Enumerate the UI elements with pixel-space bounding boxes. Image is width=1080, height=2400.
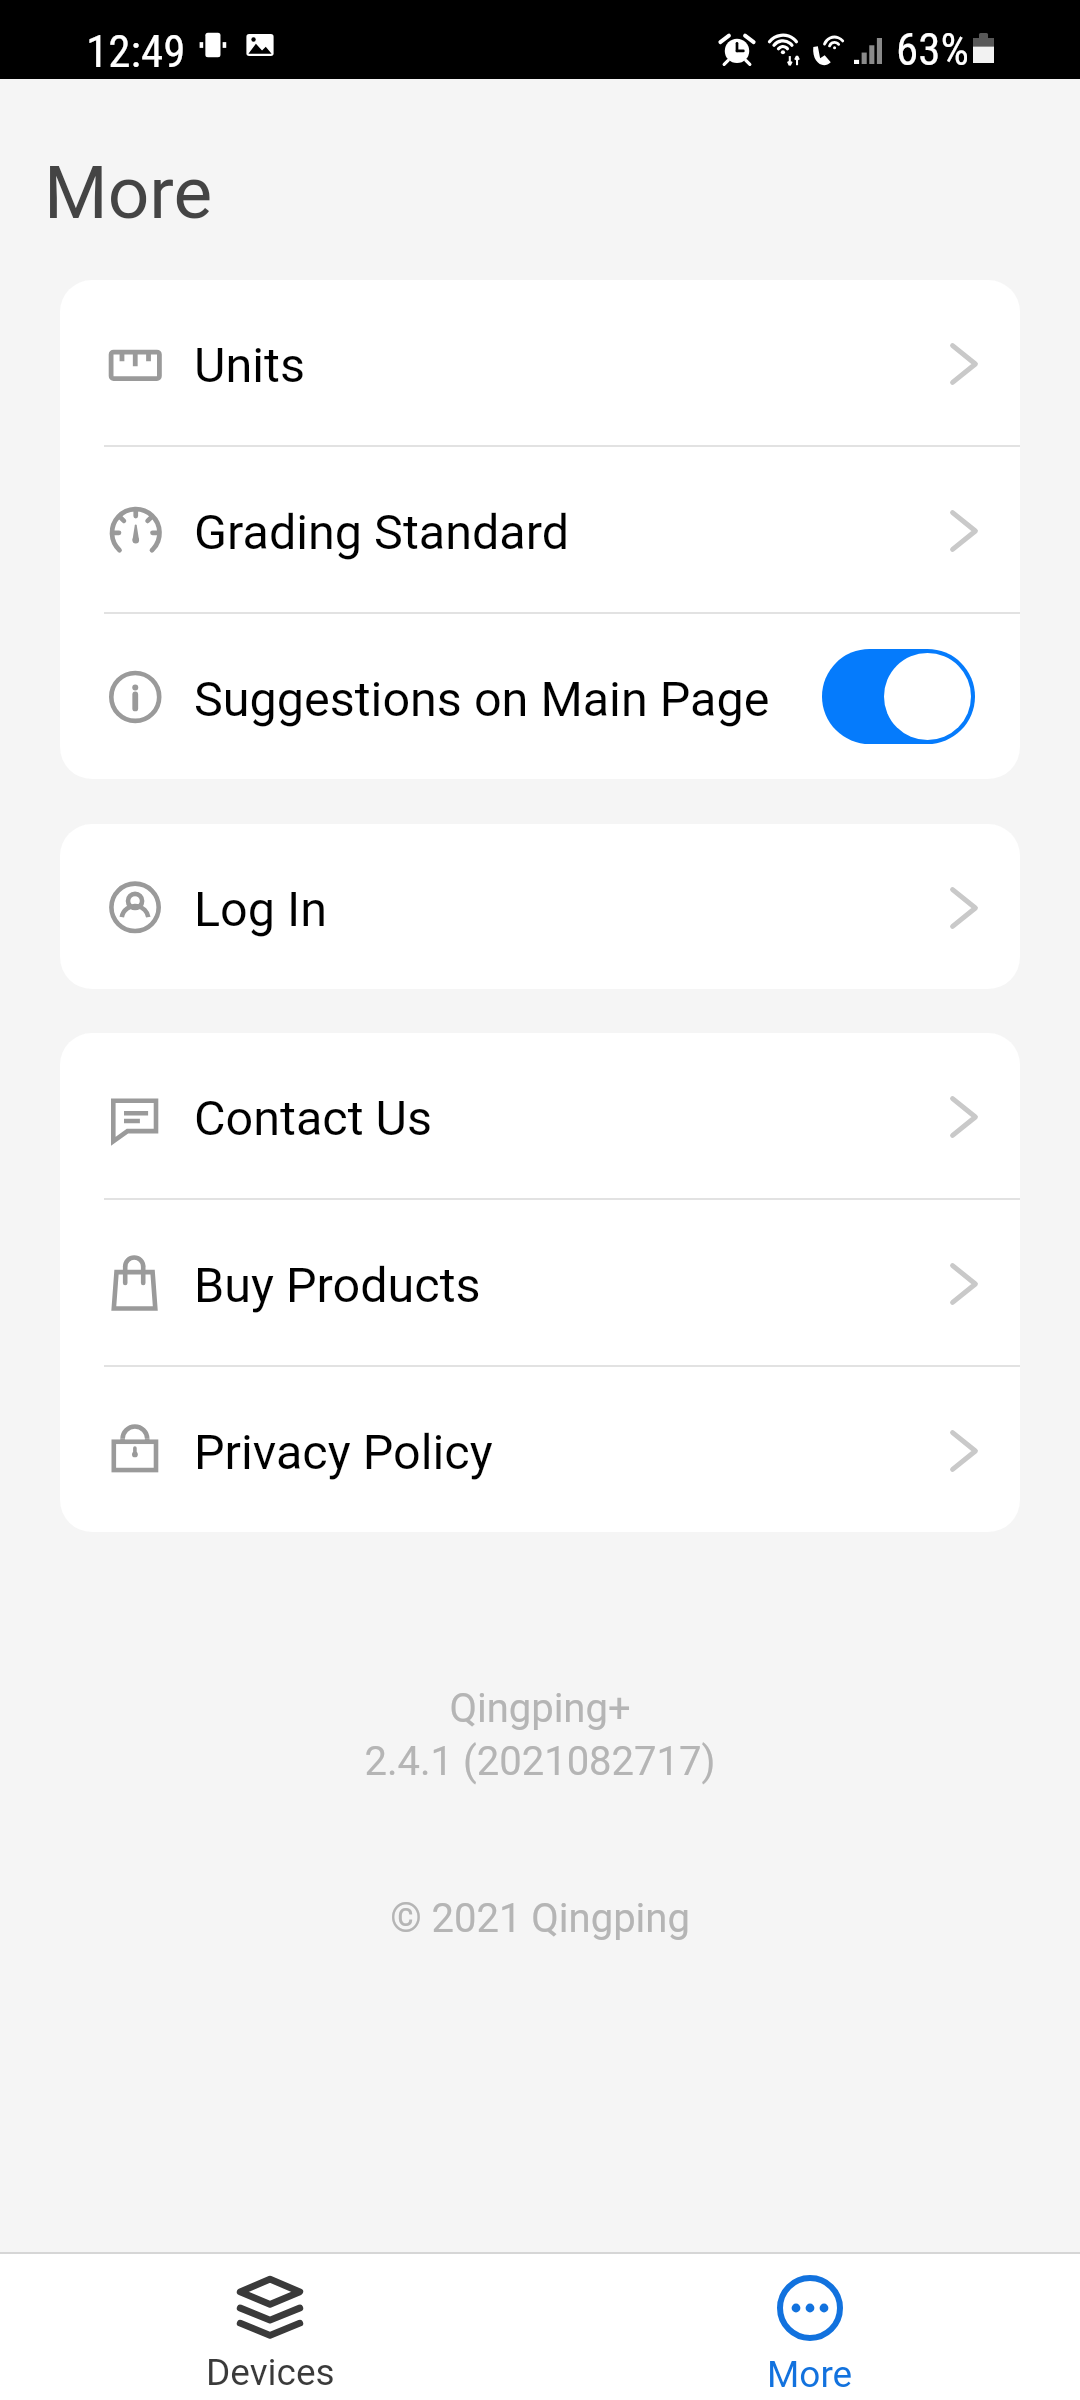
staticText: Log In bbox=[194, 881, 950, 938]
button[interactable]: Units bbox=[60, 280, 1020, 445]
staticText: More bbox=[44, 150, 213, 236]
staticText: © 2021 Qingping bbox=[0, 1895, 1080, 1942]
staticText: More bbox=[767, 2353, 853, 2396]
button[interactable]: Contact Us bbox=[60, 1033, 1020, 1198]
button[interactable]: More bbox=[540, 2254, 1080, 2400]
button[interactable]: Suggestions on Main Page bbox=[822, 649, 975, 744]
other: More bbox=[776, 2274, 844, 2342]
button[interactable]: Devices bbox=[0, 2254, 540, 2400]
staticText: Grading Standard bbox=[194, 504, 950, 561]
button[interactable]: Buy Products bbox=[60, 1200, 1020, 1365]
staticText: Devices bbox=[206, 2351, 335, 2394]
staticText: Contact Us bbox=[194, 1090, 950, 1147]
staticText: Suggestions on Main Page bbox=[194, 671, 822, 728]
button[interactable]: Suggestions on Main Page bbox=[60, 614, 1020, 779]
staticText: 63% bbox=[896, 23, 969, 76]
staticText: Units bbox=[194, 337, 950, 394]
staticText: Qingping+ 2.4.1 (2021082717) bbox=[0, 1685, 1080, 1785]
button[interactable]: Grading Standard bbox=[60, 447, 1020, 612]
staticText: 12:49 bbox=[86, 25, 186, 78]
staticText: Privacy Policy bbox=[194, 1424, 950, 1481]
button[interactable]: Privacy Policy bbox=[60, 1367, 1020, 1532]
staticText: Buy Products bbox=[194, 1257, 950, 1314]
button[interactable]: Log In bbox=[60, 824, 1020, 989]
other: Devices bbox=[235, 2274, 305, 2340]
